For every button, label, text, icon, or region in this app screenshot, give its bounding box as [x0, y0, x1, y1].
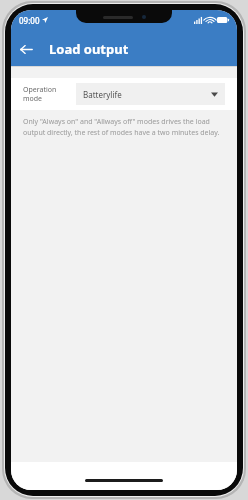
staticText: Batterylife	[83, 89, 122, 100]
staticText: Operation mode	[23, 85, 71, 103]
button[interactable]: Batterylife	[76, 83, 225, 105]
staticText: Only "Always on" and "Allways off" modes…	[23, 117, 225, 137]
button[interactable]: Back	[11, 34, 41, 64]
staticText: 09:00	[19, 15, 40, 26]
staticText: Load output	[49, 40, 129, 58]
